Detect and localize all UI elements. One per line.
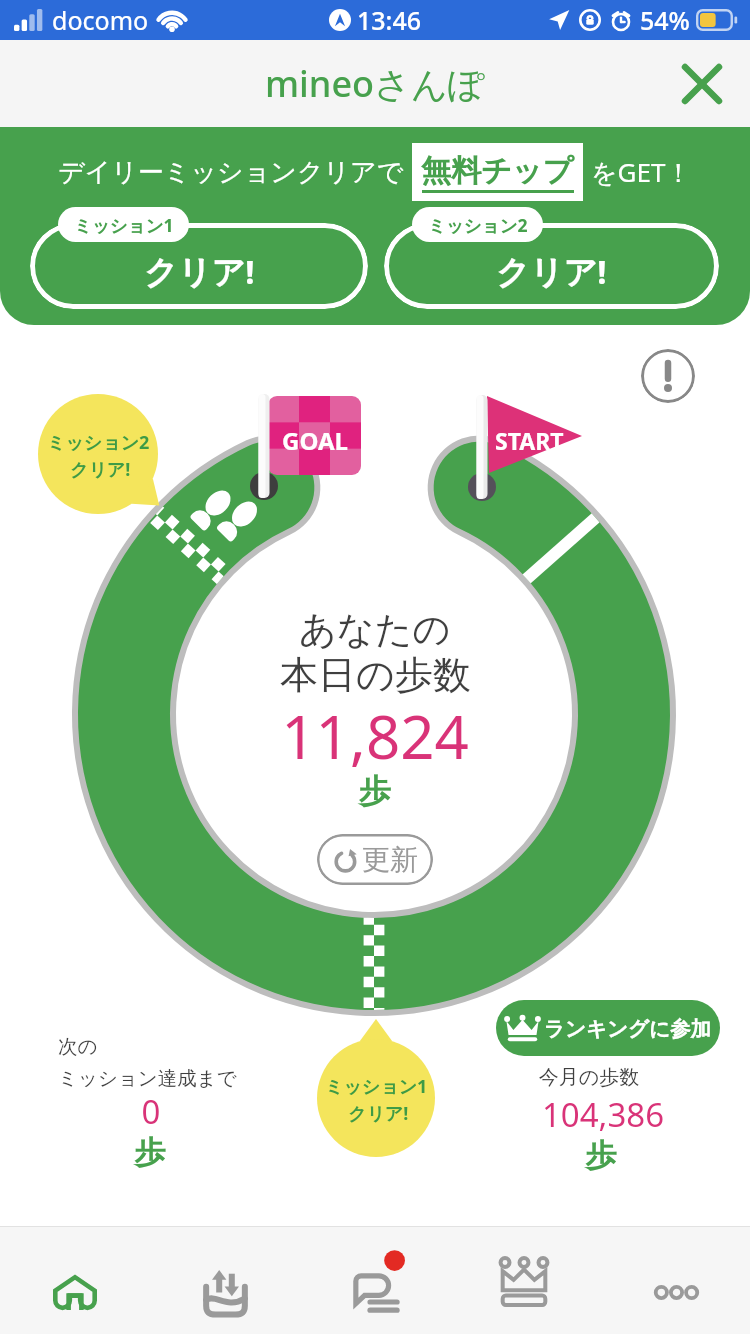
staticText: ミッション2 [47,430,150,455]
button[interactable]: ランキングに参加 [496,1000,720,1056]
staticText: あなたの [299,606,451,653]
button[interactable]: Ranking [450,1227,600,1334]
staticText: 11,824 [0,695,750,777]
staticText: 13:46 [357,3,422,37]
staticText: 歩 [0,771,750,811]
button[interactable]: Messages [300,1227,450,1334]
button[interactable]: 更新 [317,834,433,885]
button[interactable]: Data [150,1227,300,1334]
staticText: クリア! [70,457,131,482]
staticText: ランキングに参加 [544,1016,711,1042]
staticText: GOAL [282,424,348,450]
staticText: をGET！ [591,154,692,190]
staticText: 104,386 [503,1092,703,1137]
button[interactable]: クリア! [30,223,368,309]
staticText: ミッション1 [325,1074,428,1099]
staticText: 次の ミッション達成まで [58,1034,237,1091]
staticText: mineoさんぽ [265,59,485,108]
button[interactable]: Information [641,349,695,403]
staticText: クリア! [144,249,255,294]
staticText: ミッション1 [74,213,174,237]
staticText: docomo [52,3,149,37]
staticText: 0 [51,1089,251,1134]
staticText: 今月の歩数 [489,1065,689,1090]
staticText: 歩 [50,1133,250,1172]
button[interactable]: More [600,1227,750,1334]
button[interactable]: Home [0,1227,150,1334]
staticText: START [495,425,564,451]
button[interactable]: クリア! [384,223,719,309]
staticText: クリア! [348,1101,409,1126]
staticText: ミッション2 [428,213,528,237]
staticText: 54% [640,3,690,37]
staticText: 更新 [362,842,418,877]
staticText: デイリーミッションクリアで [58,156,404,189]
staticText: 歩 [501,1136,701,1175]
staticText: 本日の歩数 [280,651,471,699]
staticText: 無料チップ [421,152,574,190]
button[interactable]: Close [672,54,732,114]
staticText: クリア! [496,249,607,294]
